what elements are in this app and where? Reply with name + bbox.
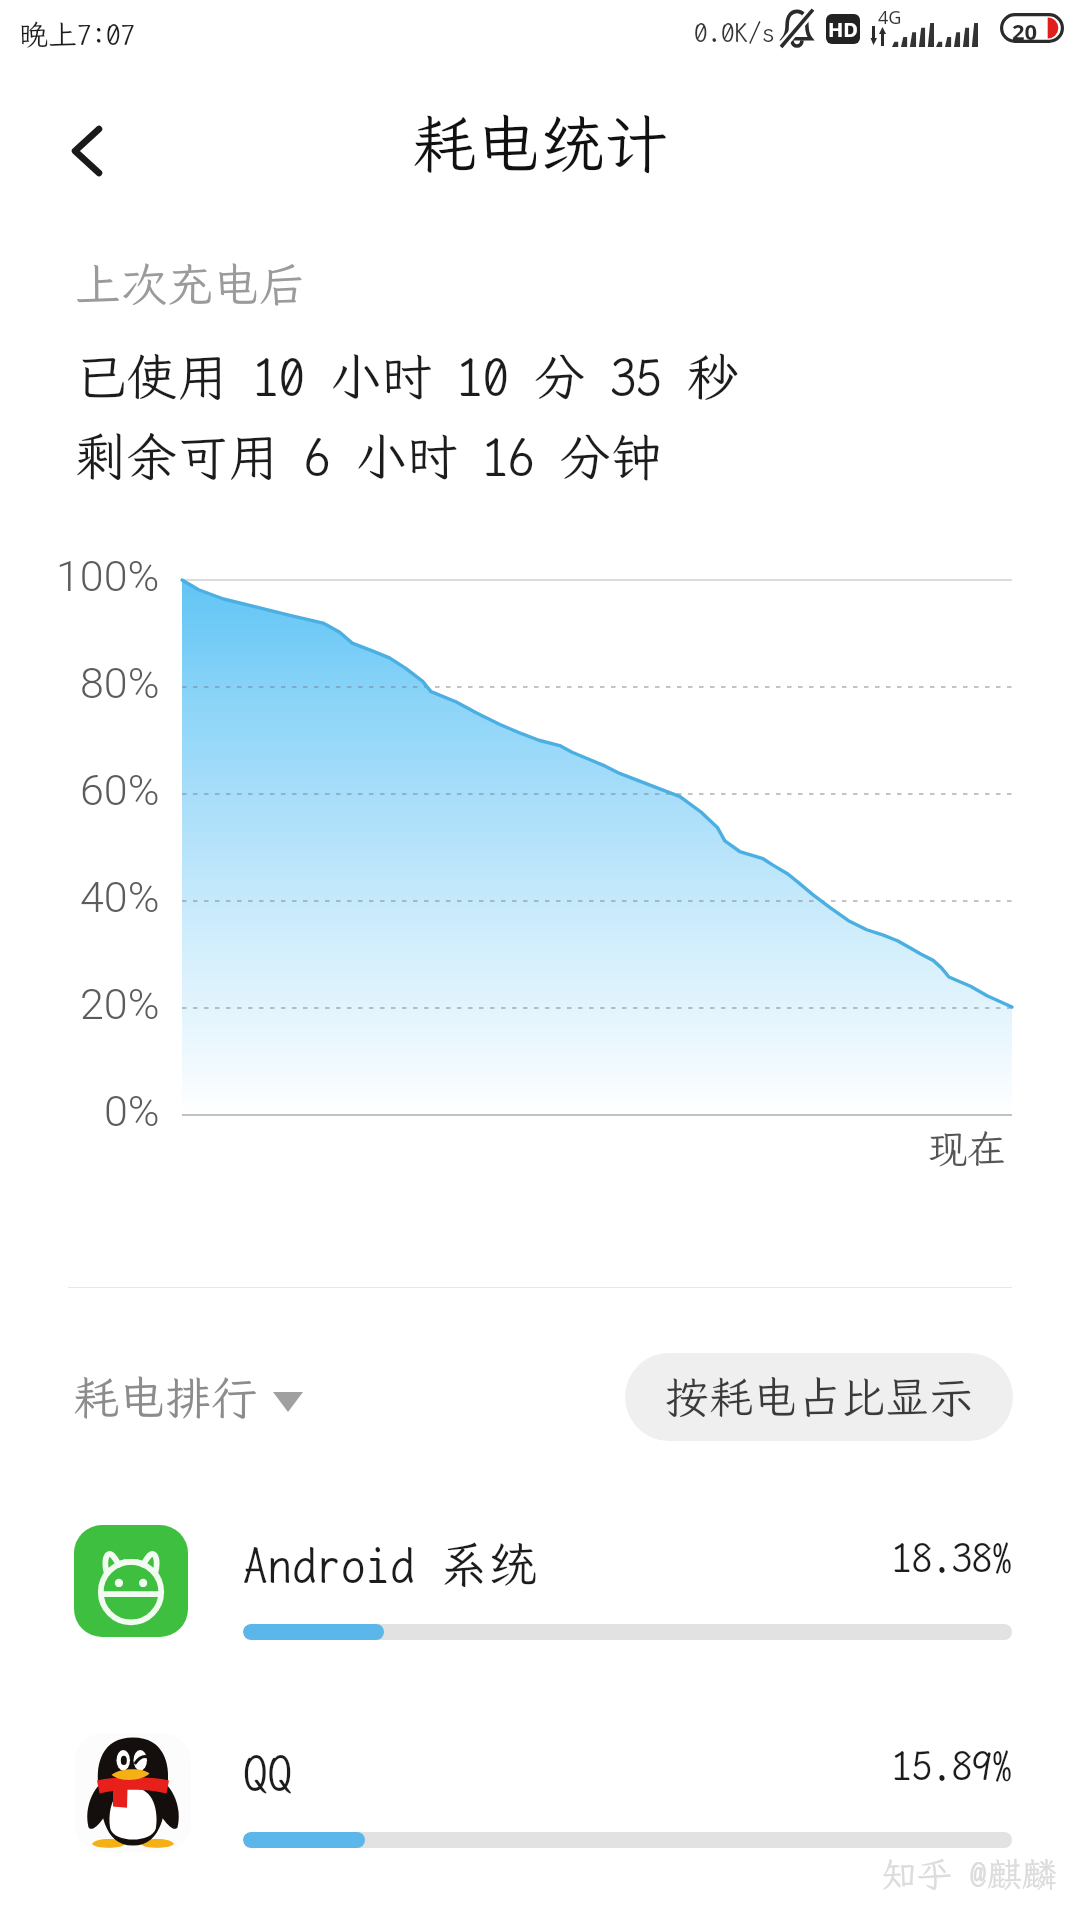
staticText: 剩余可用 6 小时 16 分钟 bbox=[75, 428, 662, 488]
staticText: Android 系统 bbox=[243, 1537, 538, 1594]
button[interactable]: Back bbox=[43, 107, 131, 195]
staticText: 晚上7:07 bbox=[19, 18, 136, 52]
staticText: 按耗电占比显示 bbox=[665, 1372, 973, 1423]
staticText: 现在 bbox=[928, 1127, 1007, 1173]
staticText: 上次充电后 bbox=[75, 258, 305, 312]
staticText: 耗电排行 bbox=[73, 1371, 257, 1425]
staticText: 0.0K/s bbox=[694, 17, 775, 49]
button[interactable]: 耗电排行 bbox=[69, 1367, 307, 1429]
staticText: 4G bbox=[878, 5, 902, 30]
staticText: 20% bbox=[80, 979, 160, 1029]
staticText: 知乎 @麒麟 bbox=[882, 1855, 1058, 1896]
staticText: 40% bbox=[80, 872, 160, 922]
staticText: 0% bbox=[104, 1086, 160, 1136]
staticText: 18.38% bbox=[892, 1535, 1012, 1582]
button[interactable]: QQ bbox=[0, 1726, 1080, 1920]
staticText: 100% bbox=[56, 551, 160, 601]
staticText: 80% bbox=[80, 658, 160, 708]
staticText: HD bbox=[828, 16, 858, 43]
staticText: 20 bbox=[1012, 16, 1038, 46]
button[interactable]: 按耗电占比显示 bbox=[625, 1353, 1013, 1441]
staticText: 耗电统计 bbox=[412, 108, 668, 183]
staticText: 60% bbox=[80, 765, 160, 815]
button[interactable]: Android 系统 bbox=[0, 1518, 1080, 1714]
staticText: 已使用 10 小时 10 分 35 秒 bbox=[75, 348, 739, 408]
staticText: QQ bbox=[243, 1745, 293, 1802]
staticText: 15.89% bbox=[892, 1743, 1012, 1790]
